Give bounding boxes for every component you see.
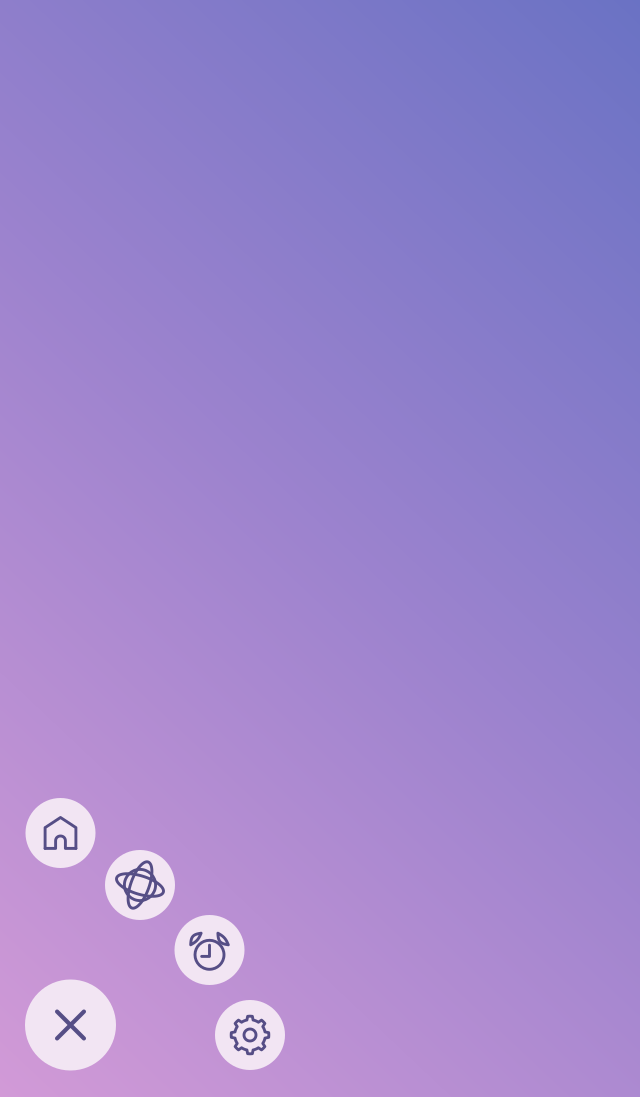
button[interactable]: Settings	[215, 1000, 285, 1070]
button[interactable]: Home	[25, 798, 95, 868]
button[interactable]: Close menu	[25, 979, 116, 1070]
button[interactable]: Alarms	[174, 915, 244, 985]
button[interactable]: Explore	[105, 850, 175, 920]
